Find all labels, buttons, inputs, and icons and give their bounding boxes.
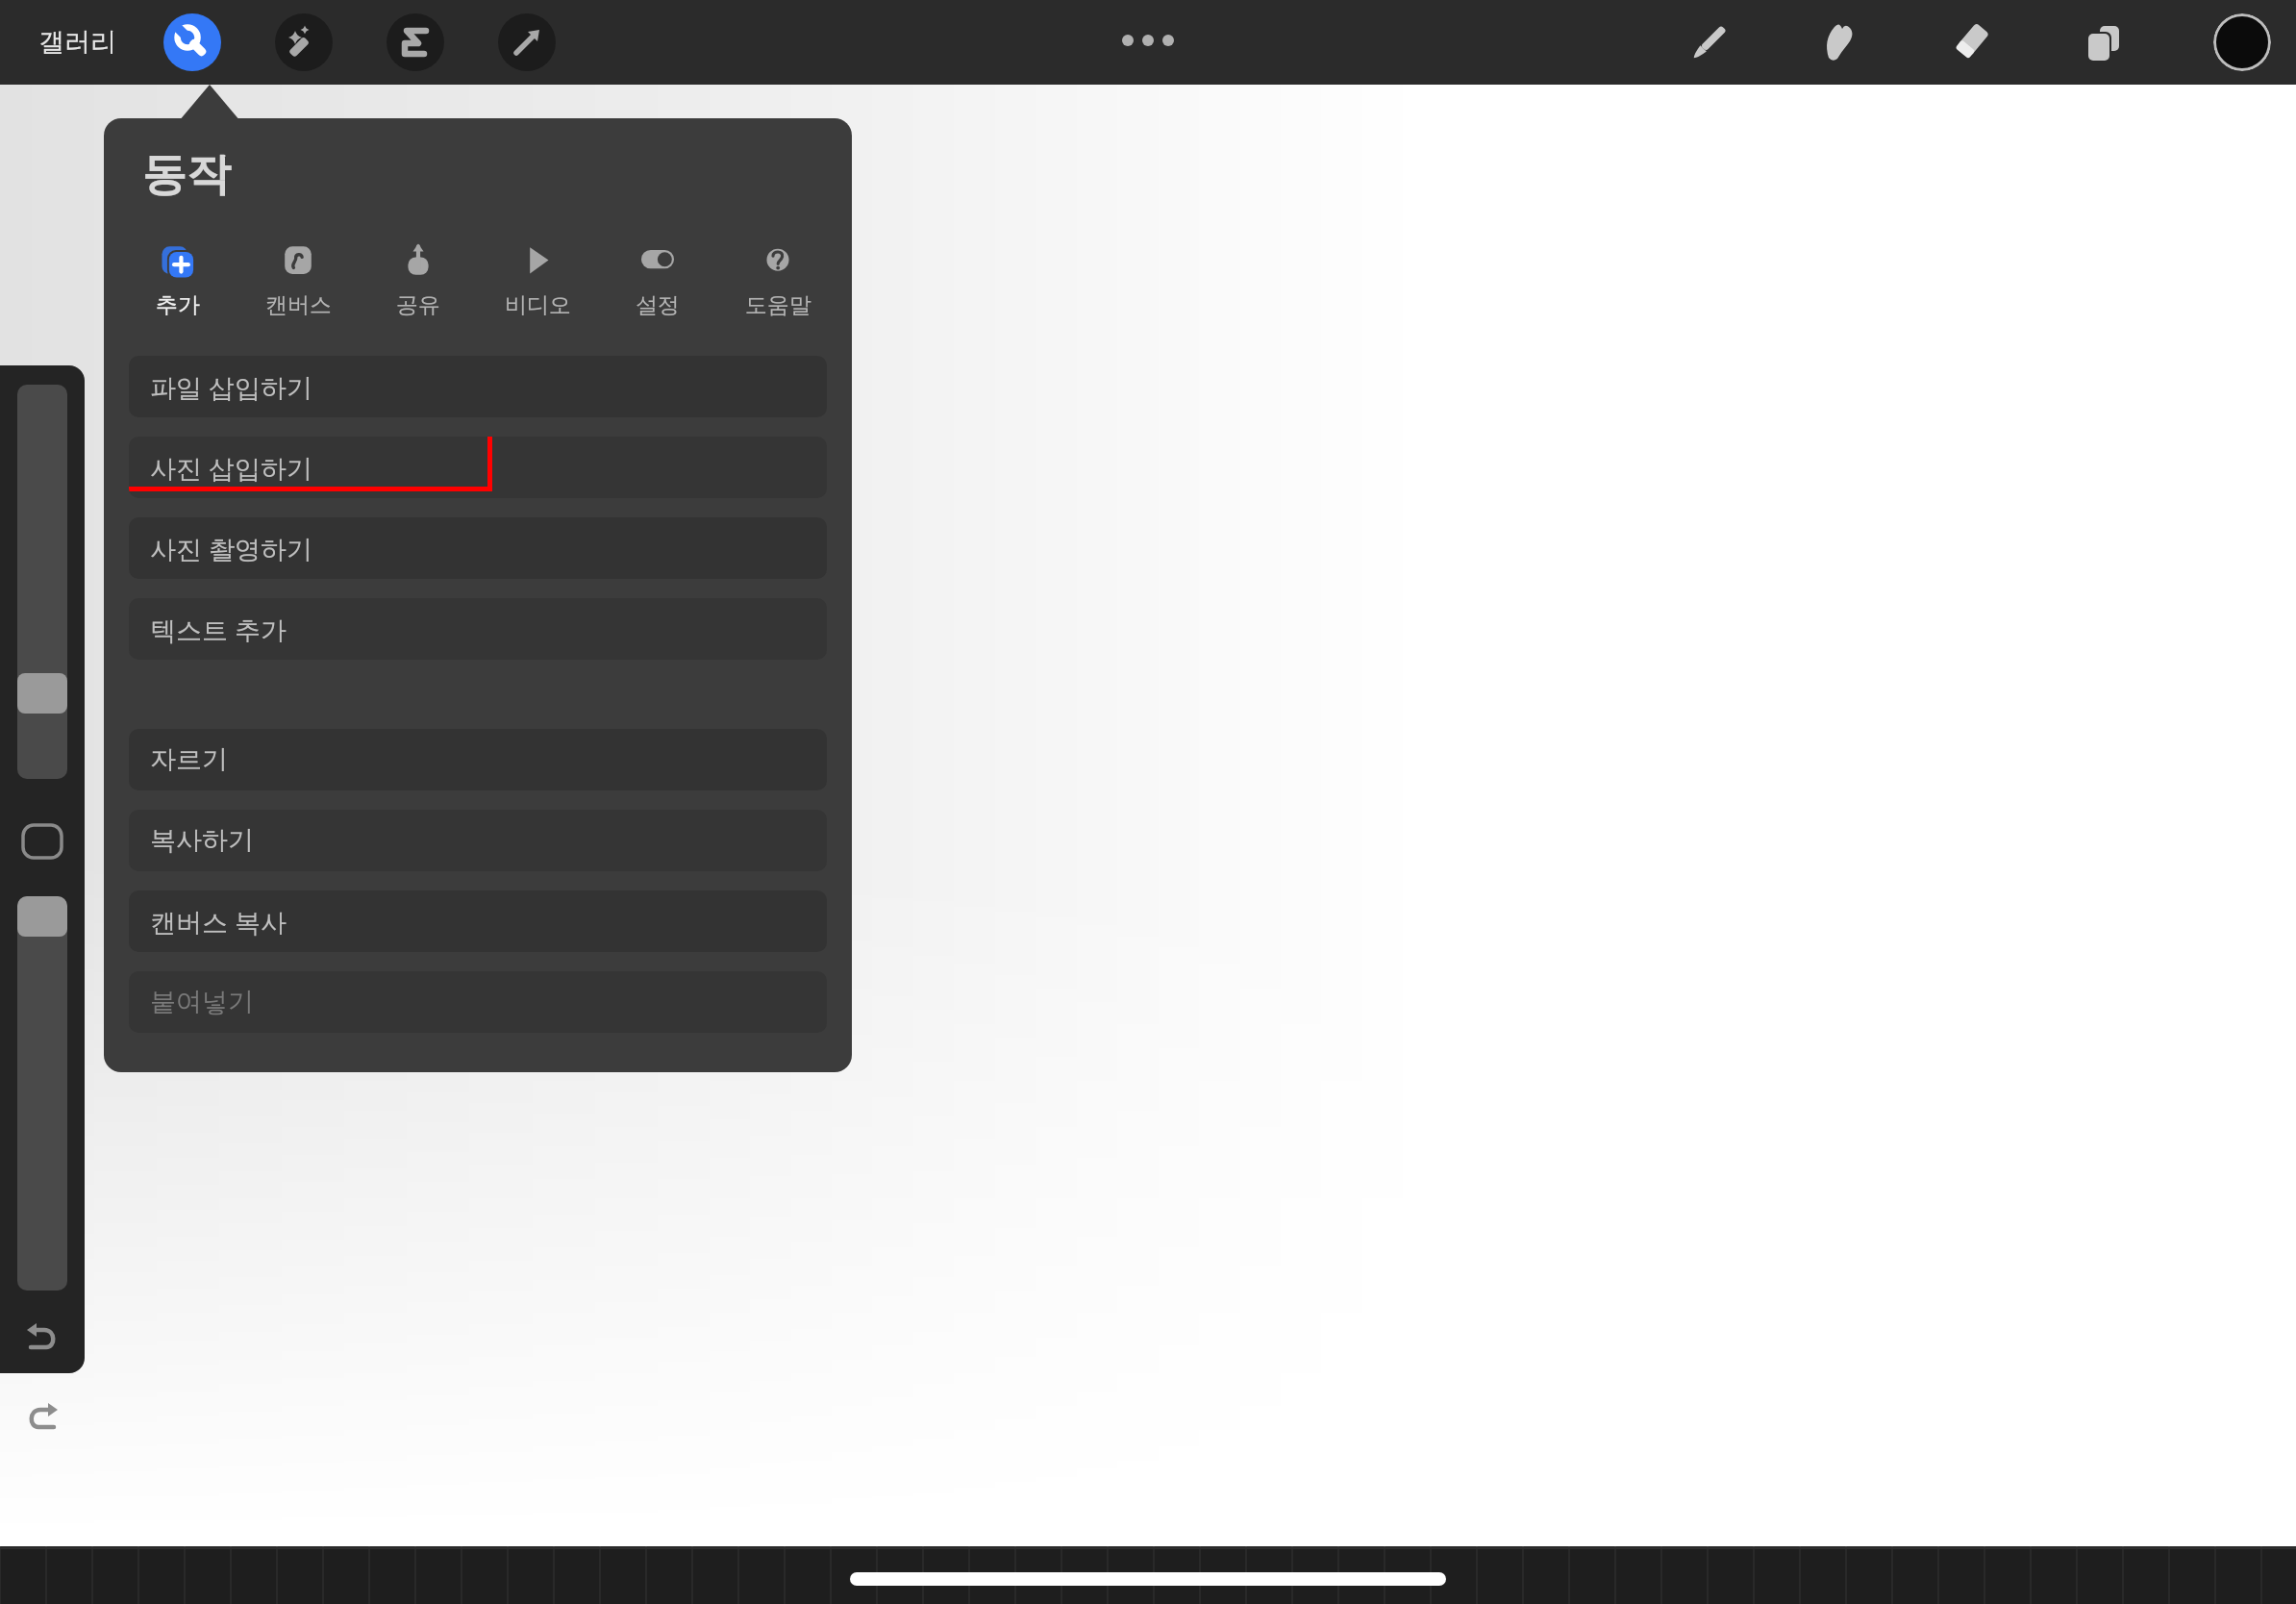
button[interactable]: Color	[2213, 13, 2271, 71]
button[interactable]: 파일 삽입하기	[129, 356, 827, 417]
staticText: 캔버스 복사	[150, 904, 287, 940]
button[interactable]: Paint	[1679, 12, 1740, 73]
button[interactable]: Smudge	[1809, 12, 1871, 73]
staticText: 동작	[142, 147, 231, 203]
button[interactable]: 사진 삽입하기	[129, 437, 827, 498]
button[interactable]: Adjustments	[275, 13, 333, 71]
staticText: 텍스트 추가	[150, 612, 287, 647]
button[interactable]: 설정	[605, 236, 711, 323]
button[interactable]: Layers	[2073, 12, 2134, 73]
button[interactable]: 공유	[365, 236, 471, 323]
staticText: 파일 삽입하기	[150, 369, 313, 405]
staticText: 도움말	[745, 291, 811, 319]
staticText: 자르기	[150, 743, 228, 776]
button[interactable]: 자르기	[129, 729, 827, 790]
staticText: 붙여넣기	[150, 986, 254, 1018]
staticText: 복사하기	[150, 824, 254, 857]
staticText: 추가	[156, 291, 200, 319]
button[interactable]: 사진 촬영하기	[129, 517, 827, 579]
staticText: 사진 삽입하기	[150, 450, 313, 486]
button[interactable]: 텍스트 추가	[129, 598, 827, 660]
button[interactable]: Erase	[1940, 12, 2002, 73]
button[interactable]: 캔버스	[245, 236, 351, 323]
staticText: 공유	[396, 291, 440, 319]
button[interactable]: Opacity	[17, 896, 67, 1291]
button[interactable]: 붙여넣기	[129, 971, 827, 1033]
button[interactable]: 도움말	[725, 236, 831, 323]
staticText: 캔버스	[265, 291, 332, 319]
staticText: 비디오	[505, 291, 571, 319]
button[interactable]: Selection	[387, 13, 444, 71]
staticText: 갤러리	[38, 26, 116, 59]
button[interactable]: 복사하기	[129, 810, 827, 871]
button[interactable]: 갤러리	[25, 18, 130, 66]
button[interactable]: 비디오	[485, 236, 590, 323]
staticText: 사진 촬영하기	[150, 531, 313, 566]
button[interactable]: Brush size	[17, 385, 67, 779]
button[interactable]: Modify	[23, 825, 62, 858]
button[interactable]: Transform	[498, 13, 556, 71]
button[interactable]: 추가	[125, 236, 231, 323]
button[interactable]: Redo	[17, 1392, 67, 1442]
button[interactable]: Undo	[17, 1313, 67, 1363]
button[interactable]: 캔버스 복사	[129, 890, 827, 952]
button[interactable]: Actions	[163, 13, 221, 71]
button[interactable]: More	[1112, 21, 1184, 60]
staticText: 설정	[636, 291, 680, 319]
